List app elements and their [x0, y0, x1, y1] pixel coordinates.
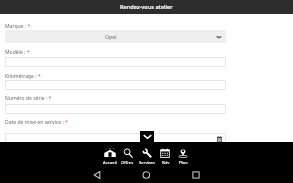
staticText: Plan: [179, 160, 188, 166]
button[interactable]: Hide keyboard: [140, 131, 154, 142]
button[interactable]: Services: [137, 144, 156, 167]
staticText: Date de mise en service : *: [5, 119, 68, 126]
staticText: Numéro de série : *: [5, 95, 52, 102]
staticText: Rendez-vous atelier: [120, 3, 173, 11]
button[interactable]: Accueil: [100, 144, 119, 167]
staticText: Marque : *: [5, 23, 31, 30]
staticText: Kilométrage : *: [5, 73, 41, 80]
button[interactable]: [5, 80, 226, 90]
button[interactable]: [5, 57, 226, 67]
button[interactable]: Offres: [118, 144, 137, 167]
button[interactable]: Plan: [174, 144, 193, 167]
button[interactable]: [5, 104, 226, 114]
button[interactable]: Pick a date: [217, 136, 222, 142]
staticText: Accueil: [103, 160, 117, 166]
staticText: Opel: [105, 33, 117, 40]
staticText: Modèle : *: [5, 49, 30, 56]
staticText: Services: [139, 160, 155, 166]
button[interactable]: [5, 133, 226, 143]
staticText: Offres: [121, 160, 134, 166]
staticText: Rdv: [162, 160, 170, 166]
button[interactable]: Rdv: [156, 144, 175, 167]
button[interactable]: Opel: [5, 30, 226, 43]
